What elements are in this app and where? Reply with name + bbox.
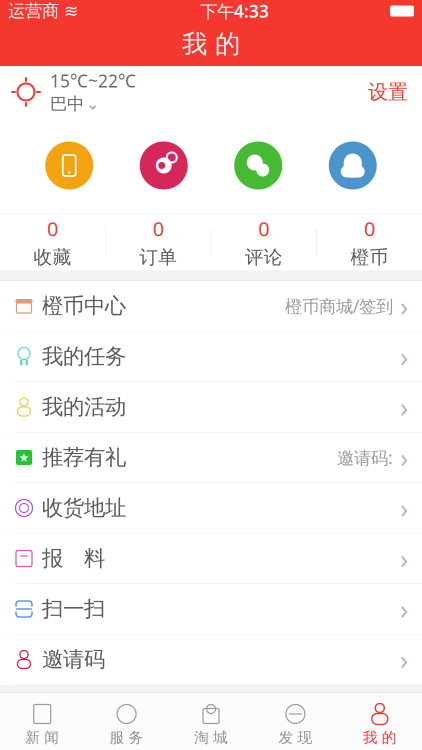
staticText: 淘 城 (194, 728, 228, 746)
button[interactable]: 设置 (354, 70, 422, 114)
staticText: 设置 (368, 80, 408, 104)
staticText: 下午4:33 (200, 0, 269, 22)
staticText: 橙币 (350, 246, 388, 269)
staticText: 0 (258, 215, 269, 242)
button[interactable]: 0 (211, 206, 316, 278)
staticText: ★ (18, 451, 29, 464)
staticText: 评论 (245, 246, 283, 269)
button[interactable]: 报 料 (0, 533, 422, 584)
staticText: 橙币中心 (42, 293, 126, 319)
staticText: › (400, 339, 408, 374)
button[interactable]: ★ (0, 432, 422, 483)
staticText: 0 (47, 215, 58, 242)
staticText: 推荐有礼 (42, 444, 126, 471)
staticText: › (400, 440, 408, 475)
staticText: 服 务 (110, 728, 144, 746)
button[interactable]: 邀请码 (0, 634, 422, 685)
button[interactable]: 淘 城 (169, 696, 253, 746)
button[interactable]: 我的任务 (0, 331, 422, 382)
staticText: 巴中 (50, 93, 84, 115)
button[interactable]: 0 (0, 206, 105, 278)
button[interactable]: 0 (106, 206, 211, 278)
staticText: 我 的 (182, 28, 240, 59)
staticText: 报 料 (42, 545, 105, 572)
staticText: 我的活动 (42, 394, 126, 420)
staticText: › (400, 541, 408, 576)
staticText: 运营商 (8, 0, 59, 22)
staticText: ≋ (64, 1, 79, 21)
staticText: › (400, 288, 408, 324)
button[interactable]: 收货地址 (0, 483, 422, 533)
staticText: 邀请码 (42, 646, 105, 673)
staticText: 收藏 (34, 246, 72, 269)
staticText: 订单 (139, 246, 177, 269)
staticText: 我的任务 (42, 343, 126, 370)
staticText: › (400, 642, 408, 677)
staticText: ⌄ (86, 95, 99, 113)
button[interactable]: 新 闻 (0, 696, 84, 746)
staticText: 新 闻 (25, 728, 59, 746)
staticText: 橙币商城/签到 (285, 294, 393, 317)
button[interactable]: 我的活动 (0, 382, 422, 432)
button[interactable]: 发 现 (253, 696, 338, 746)
staticText: 发 现 (278, 728, 312, 746)
button[interactable]: 微信登录 (234, 141, 282, 189)
staticText: 邀请码: (337, 446, 393, 469)
button[interactable]: 手机登录 (45, 141, 93, 189)
staticText: › (400, 591, 408, 627)
staticText: 收货地址 (42, 495, 126, 521)
button[interactable]: 微博登录 (140, 141, 188, 189)
staticText: › (400, 490, 408, 526)
button[interactable]: 服 务 (84, 696, 169, 746)
staticText: 15°C~22°C (50, 69, 136, 92)
staticText: 0 (364, 215, 375, 242)
staticText: 0 (153, 215, 164, 242)
staticText: 扫一扫 (42, 596, 105, 622)
button[interactable]: 扫一扫 (0, 584, 422, 634)
button[interactable]: QQ登录 (329, 141, 377, 189)
button[interactable]: 我 的 (338, 696, 422, 746)
staticText: › (400, 389, 408, 425)
button[interactable]: 橙币中心 (0, 281, 422, 331)
staticText: 我 的 (363, 728, 397, 746)
button[interactable]: 0 (317, 206, 422, 278)
